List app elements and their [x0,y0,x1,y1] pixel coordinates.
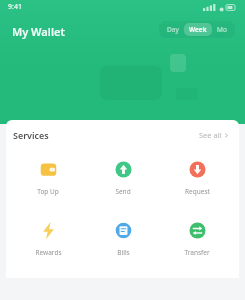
button[interactable]: Day [162,23,184,36]
staticText: My Wallet [12,24,65,39]
button[interactable]: Transfer [165,217,229,260]
button[interactable]: Mo [212,23,232,36]
button[interactable]: Rewards [16,217,80,260]
staticText: See all [199,130,222,140]
staticText: Rewards [35,248,62,257]
staticText: Day [167,25,179,34]
staticText: Transfer [184,248,210,257]
button[interactable]: Week [184,23,212,36]
button[interactable]: My Wallet [12,24,65,39]
button[interactable]: Bills [91,217,155,260]
staticText: Send [115,187,131,196]
staticText: Services [13,129,49,141]
button[interactable]: Send [91,156,155,199]
button[interactable]: Request [165,156,229,199]
staticText: Week [189,25,207,34]
staticText: Request [185,187,210,196]
button[interactable]: Top Up [16,156,80,199]
staticText: 9:41 [8,2,22,12]
button[interactable]: See all [196,128,232,142]
staticText: Mo [217,25,227,34]
staticText: Bills [117,248,130,257]
staticText: Top Up [37,187,59,196]
